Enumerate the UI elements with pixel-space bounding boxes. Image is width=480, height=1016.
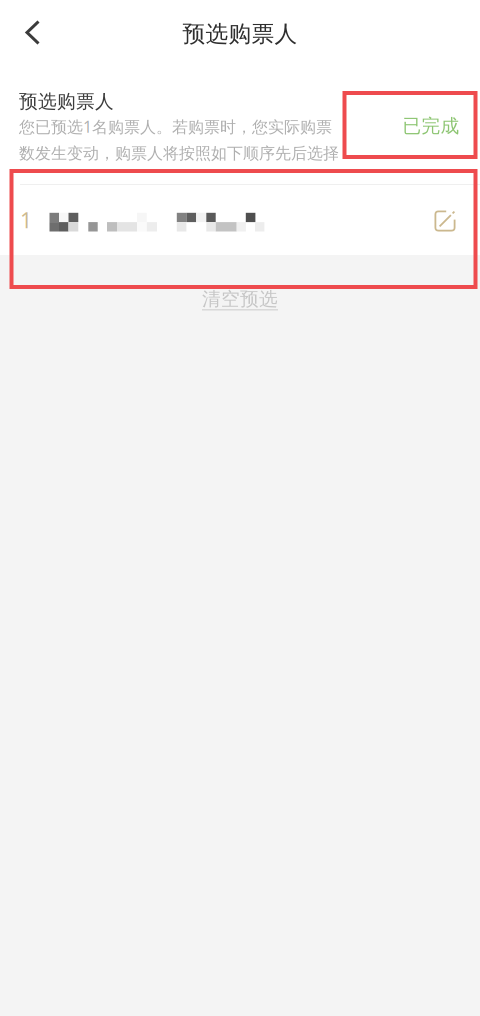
button[interactable]: 清空预选 [190, 284, 290, 314]
staticText: 预选购票人 [19, 90, 114, 113]
button[interactable]: 已完成 [398, 104, 464, 148]
button[interactable]: 1 [0, 185, 480, 255]
staticText: 您已预选1名购票人。若购票时，您实际购票 [19, 116, 332, 137]
button[interactable]: 返回 [5, 4, 61, 60]
staticText: 1 [20, 206, 32, 234]
staticText: 预选购票人 [182, 20, 297, 48]
staticText: 清空预选 [202, 287, 278, 310]
staticText: 数发生变动，购票人将按照如下顺序先后选择 [19, 144, 339, 163]
button[interactable]: 编辑 [423, 199, 467, 243]
staticText: 已完成 [402, 114, 459, 137]
